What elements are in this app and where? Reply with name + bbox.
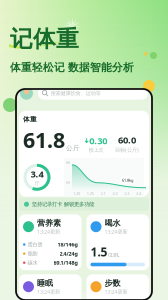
button[interactable]: 喝水 (86, 214, 149, 270)
staticText: 坚持记录打卡 解锁更多功能 (32, 201, 94, 208)
staticText: 1.25 (87, 191, 94, 196)
button[interactable]: 步数 (86, 274, 149, 300)
staticText: 18/146g (57, 241, 77, 248)
staticText: 13:24更新 (37, 228, 60, 235)
staticText: 斤 (34, 180, 39, 187)
staticText: 69.1/148g (53, 259, 77, 266)
staticText: 步数 (104, 278, 120, 288)
button[interactable]: 营养素 (19, 214, 81, 270)
staticText: 61.8 (23, 125, 65, 154)
staticText: /2.0L (107, 251, 119, 258)
staticText: 13:24更新 (104, 228, 127, 235)
staticText: 公斤 (66, 144, 80, 152)
staticText: 搜索健康饮食、运动等 (50, 90, 100, 97)
staticText: 3.4 (30, 168, 43, 180)
staticText: 60 (66, 179, 70, 185)
staticText: 2.3 (124, 191, 129, 196)
staticText: 较上次 (88, 147, 103, 153)
staticText: 碳水 (27, 259, 37, 266)
staticText: 1.20 (73, 191, 80, 196)
button[interactable]: Profile (20, 87, 33, 100)
staticText: 13:24更新 (104, 288, 127, 295)
staticText: 66 (66, 160, 70, 165)
staticText: 60.0 (118, 134, 136, 146)
staticText: 1.5 (90, 244, 107, 260)
staticText: 体重轻松记 数据智能分析 (10, 61, 134, 74)
staticText: 2.1 (101, 191, 106, 196)
staticText: 61.8kg (122, 178, 133, 183)
button[interactable]: 搜索健康饮食、运动等 (38, 87, 148, 100)
staticText: 记体重 (10, 25, 79, 53)
staticText: 2.4/24g (59, 250, 77, 257)
staticText: 目标(公斤) (115, 146, 139, 153)
staticText: 喝水 (104, 218, 120, 228)
staticText: 体重 (23, 115, 37, 123)
staticText: 蛋白质 (27, 241, 42, 248)
button[interactable]: 坚持记录打卡 解锁更多功能 (19, 198, 149, 211)
button[interactable]: 睡眠 (19, 274, 81, 300)
staticText: 13:24更新 (37, 288, 60, 295)
staticText: 脂肪 (27, 250, 37, 257)
staticText: 睡眠 (37, 278, 53, 288)
staticText: 0.30 (89, 134, 107, 147)
staticText: 2.4 (136, 191, 141, 196)
staticText: 2.2 (112, 191, 117, 196)
staticText: 营养素 (37, 218, 61, 228)
